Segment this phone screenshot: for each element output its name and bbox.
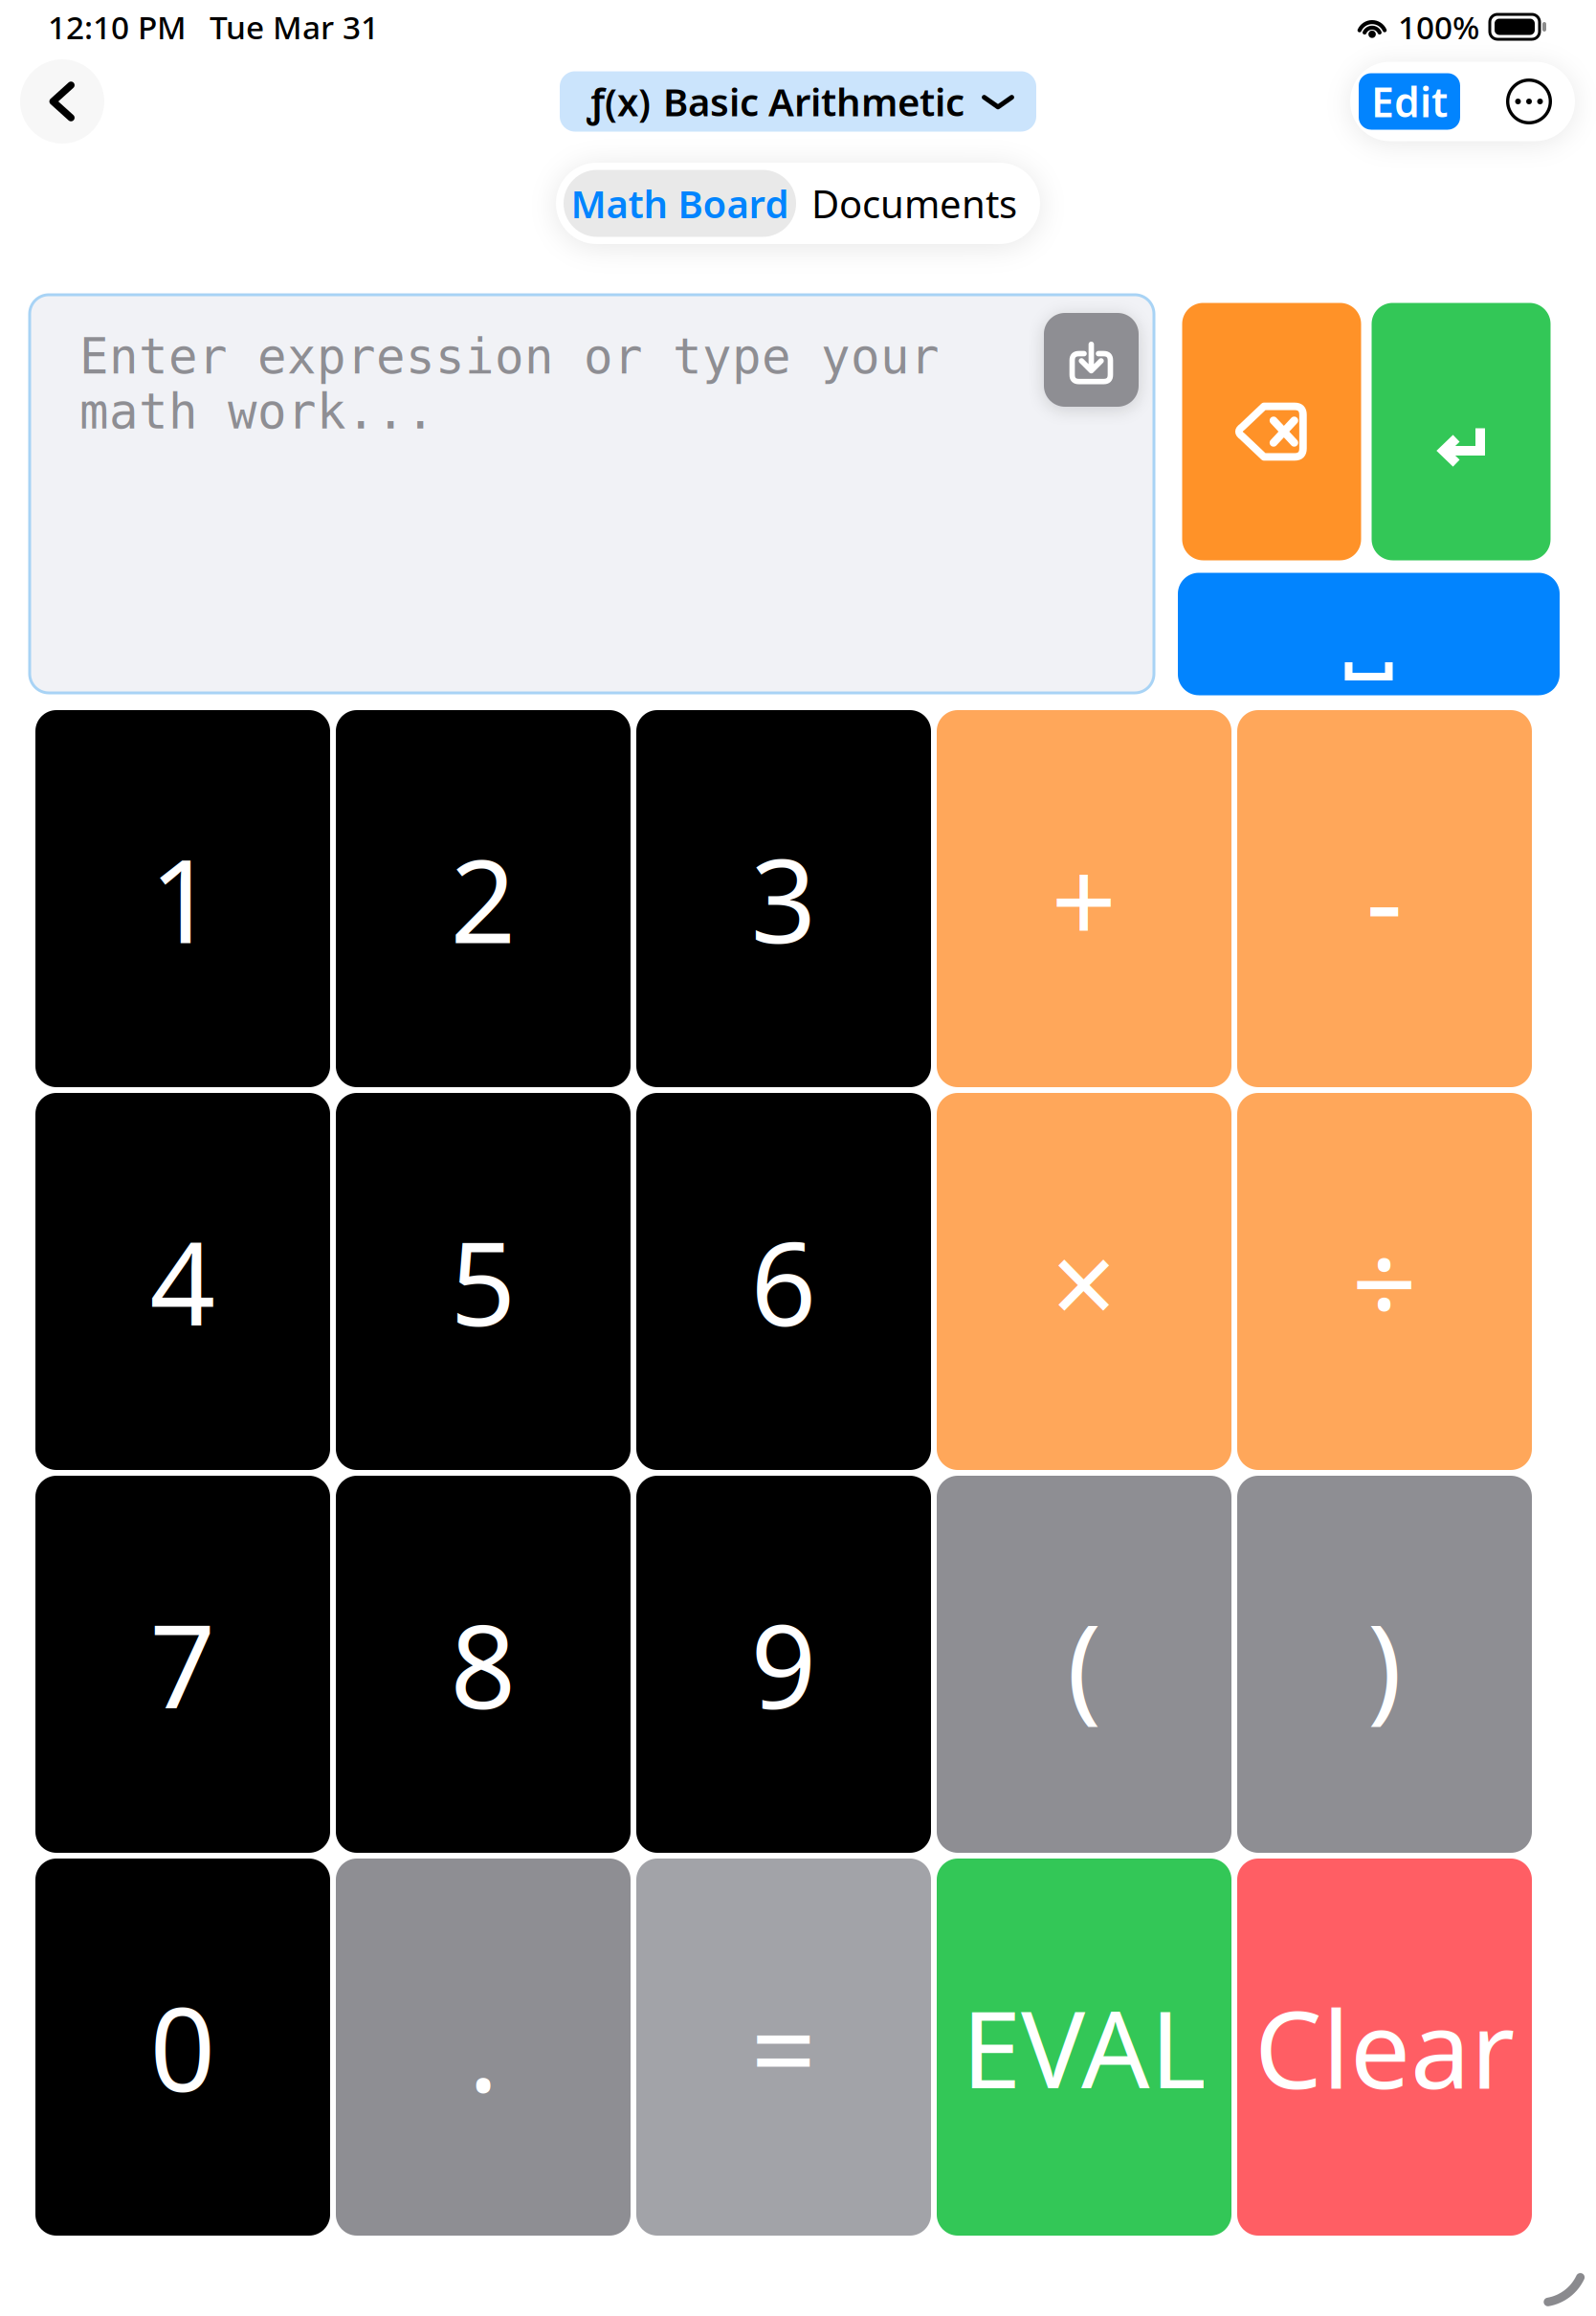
button[interactable]: = <box>636 1859 931 2236</box>
staticText: Clear <box>1254 1976 1515 2118</box>
staticText: . <box>468 1971 499 2123</box>
button[interactable]: More options <box>1506 78 1552 124</box>
button[interactable]: Return <box>1372 303 1551 560</box>
staticText: Tue Mar 31 <box>210 6 379 48</box>
staticText: Basic Arithmetic <box>663 76 964 127</box>
button[interactable]: Back <box>20 59 104 144</box>
button[interactable]: + <box>937 710 1231 1087</box>
button[interactable]: Backspace <box>1182 303 1361 560</box>
staticText: Math Board <box>571 178 789 229</box>
button[interactable]: EVAL <box>937 1859 1231 2236</box>
staticText: 3 <box>751 822 817 975</box>
staticText: - <box>1366 822 1403 975</box>
button[interactable]: Math Board <box>564 170 796 237</box>
staticText: ÷ <box>1352 1205 1418 1358</box>
staticText: 2 <box>450 822 516 975</box>
button[interactable]: 4 <box>35 1093 330 1470</box>
staticText: 12:10 PM <box>48 6 187 48</box>
button[interactable]: 1 <box>35 710 330 1087</box>
staticText: 5 <box>450 1205 516 1358</box>
staticText: 1 <box>150 822 216 975</box>
staticText: Documents <box>811 178 1017 229</box>
staticText: ( <box>1067 1588 1101 1741</box>
staticText: 100% <box>1398 6 1479 48</box>
staticText: + <box>1051 822 1117 975</box>
staticText: = <box>751 1971 817 2123</box>
button[interactable]: Space <box>1178 573 1560 695</box>
staticText: 0 <box>150 1971 216 2123</box>
button[interactable]: × <box>937 1093 1231 1470</box>
staticText: 4 <box>150 1205 216 1358</box>
staticText: Edit <box>1371 74 1448 129</box>
staticText: Enter expression or type your math work.… <box>79 329 940 439</box>
button[interactable]: 5 <box>336 1093 631 1470</box>
staticText: 9 <box>751 1588 817 1741</box>
button[interactable]: Edit <box>1359 73 1460 130</box>
button[interactable]: ) <box>1237 1476 1532 1853</box>
button[interactable]: 6 <box>636 1093 931 1470</box>
button[interactable]: Clear <box>1237 1859 1532 2236</box>
button[interactable]: 8 <box>336 1476 631 1853</box>
button[interactable]: 3 <box>636 710 931 1087</box>
button[interactable]: 0 <box>35 1859 330 2236</box>
button[interactable]: - <box>1237 710 1532 1087</box>
button[interactable]: Save <box>1044 313 1139 407</box>
button[interactable]: ( <box>937 1476 1231 1853</box>
staticText: 7 <box>150 1588 216 1741</box>
staticText: ) <box>1367 1588 1402 1741</box>
staticText: ƒ(x) <box>587 76 651 127</box>
button[interactable]: 7 <box>35 1476 330 1853</box>
staticText: 8 <box>450 1588 516 1741</box>
button[interactable]: 9 <box>636 1476 931 1853</box>
button[interactable]: ÷ <box>1237 1093 1532 1470</box>
button[interactable]: Documents <box>796 170 1032 237</box>
button[interactable]: . <box>336 1859 631 2236</box>
staticText: EVAL <box>962 1976 1207 2118</box>
button[interactable]: 2 <box>336 710 631 1087</box>
button[interactable]: ƒ(x) <box>560 71 1036 132</box>
staticText: 6 <box>751 1205 817 1358</box>
staticText: × <box>1051 1205 1117 1358</box>
